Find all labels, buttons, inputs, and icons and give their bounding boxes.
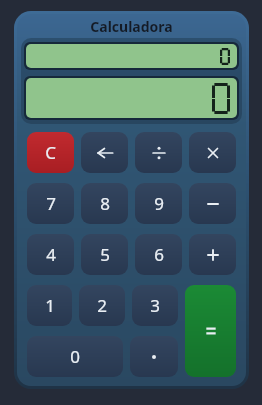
staticText: 5 <box>100 243 110 266</box>
button[interactable]: Backspace <box>81 132 128 173</box>
staticText: 9 <box>154 192 164 215</box>
staticText: C <box>45 141 56 164</box>
button[interactable]: 2 <box>79 285 125 326</box>
button[interactable]: 0 <box>27 336 123 377</box>
staticText: 6 <box>154 243 164 266</box>
staticText: 8 <box>100 192 110 215</box>
button[interactable]: Equals <box>185 285 236 377</box>
staticText: 1 <box>45 294 55 317</box>
staticText: 0 <box>70 345 80 368</box>
button[interactable]: 4 <box>27 234 74 275</box>
button[interactable]: 7 <box>27 183 74 224</box>
button[interactable]: 3 <box>132 285 178 326</box>
button[interactable]: Minus <box>189 183 236 224</box>
button[interactable]: Plus <box>189 234 236 275</box>
button[interactable]: Divide <box>135 132 182 173</box>
button[interactable]: 1 <box>27 285 72 326</box>
button[interactable]: Multiply <box>189 132 236 173</box>
staticText: Calculadora <box>90 17 173 36</box>
button[interactable]: 8 <box>81 183 128 224</box>
button[interactable]: 9 <box>135 183 182 224</box>
button[interactable]: 6 <box>135 234 182 275</box>
staticText: 3 <box>150 294 160 317</box>
staticText: 2 <box>97 294 107 317</box>
button[interactable]: C <box>27 132 74 173</box>
button[interactable]: 5 <box>81 234 128 275</box>
button[interactable]: Decimal point <box>130 336 178 377</box>
staticText: 7 <box>46 192 56 215</box>
staticText: 4 <box>46 243 56 266</box>
